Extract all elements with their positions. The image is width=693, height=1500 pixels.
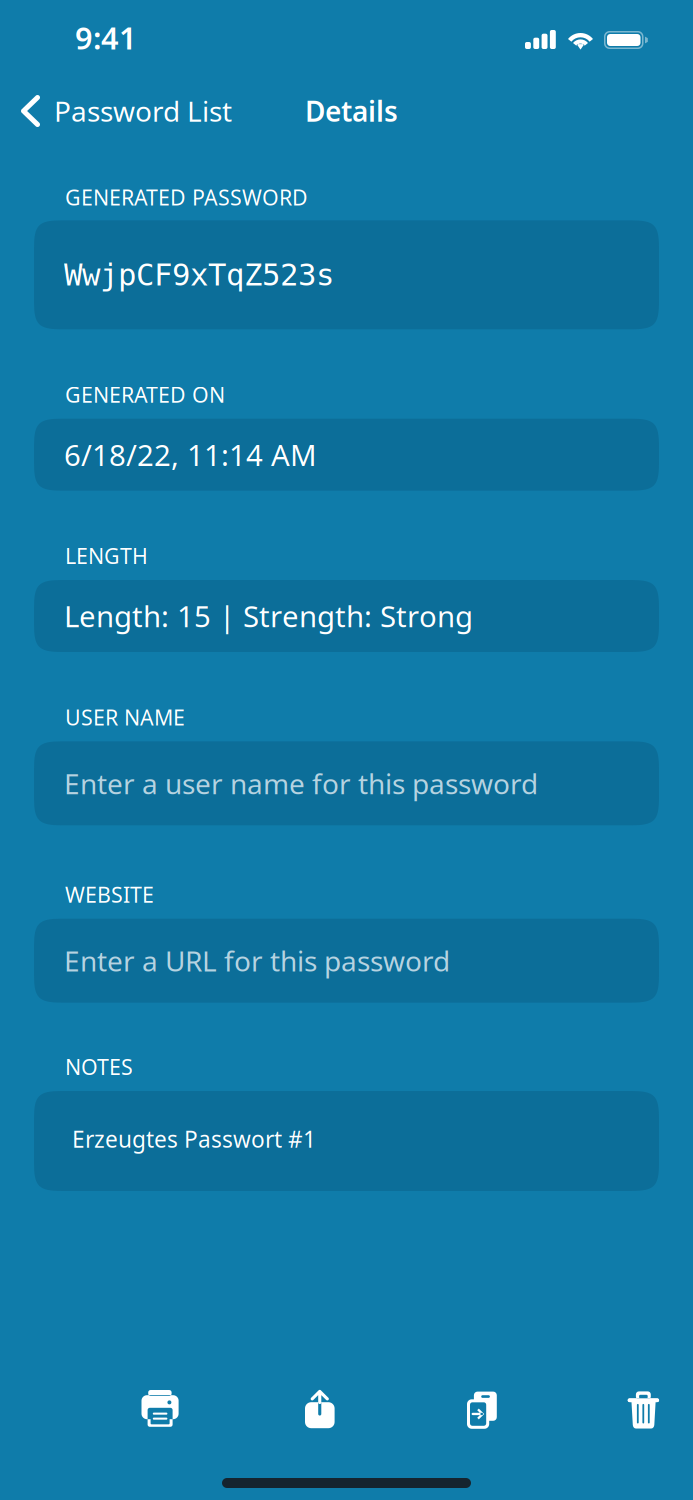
staticText: GENERATED ON — [65, 380, 225, 409]
button[interactable]: Enter a user name for this password — [0, 741, 693, 825]
staticText: Details — [305, 92, 398, 130]
staticText: 6/18/22, 11:14 AM — [64, 435, 317, 474]
staticText: LENGTH — [65, 542, 148, 570]
button[interactable]: Print — [118, 1380, 202, 1436]
staticText: NOTES — [65, 1053, 133, 1081]
button[interactable]: Copy — [440, 1380, 524, 1436]
staticText: WwjpCF9xTqZ523s — [64, 257, 334, 293]
staticText: Enter a URL for this password — [64, 942, 450, 979]
button[interactable]: Share — [279, 1380, 363, 1436]
staticText: Length: 15 | Strength: Strong — [64, 596, 473, 635]
button[interactable]: Erzeugtes Passwort #1 — [0, 1091, 693, 1191]
button[interactable]: Password List — [0, 70, 246, 152]
staticText: USER NAME — [65, 703, 185, 731]
staticText: WEBSITE — [65, 880, 154, 909]
staticText: GENERATED PASSWORD — [65, 183, 308, 211]
button[interactable]: Delete — [601, 1380, 685, 1436]
button[interactable]: Enter a URL for this password — [0, 919, 693, 1003]
staticText: Password List — [54, 92, 232, 130]
staticText: Erzeugtes Passwort #1 — [72, 1124, 316, 1154]
staticText: 9:41 — [75, 17, 137, 58]
staticText: Enter a user name for this password — [64, 765, 538, 802]
